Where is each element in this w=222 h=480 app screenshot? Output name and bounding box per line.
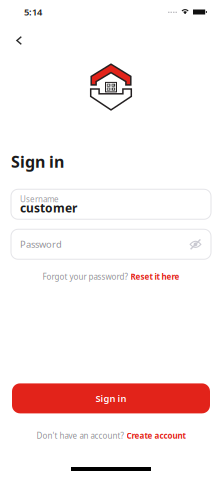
button[interactable]: Forgot your password? bbox=[36, 267, 185, 286]
staticText: Don't have an account? bbox=[36, 430, 123, 441]
staticText: Username bbox=[20, 194, 59, 204]
staticText: Reset it here bbox=[130, 271, 179, 282]
staticText: Sign in bbox=[95, 392, 126, 405]
button[interactable]: Back bbox=[7, 24, 31, 50]
staticText: Forgot your password? bbox=[42, 271, 127, 282]
button[interactable]: Sign in bbox=[12, 383, 210, 413]
button[interactable]: Show password bbox=[189, 239, 202, 250]
staticText: Sign in bbox=[11, 151, 64, 172]
staticText: Password bbox=[20, 238, 62, 250]
button[interactable]: Don't have an account? bbox=[30, 426, 191, 445]
staticText: customer bbox=[20, 200, 77, 216]
staticText: 5:14 bbox=[24, 6, 42, 18]
staticText: Create account bbox=[126, 430, 185, 441]
